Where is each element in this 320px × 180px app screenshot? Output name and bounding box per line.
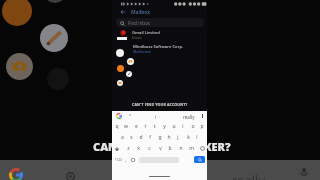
button[interactable]: Shift [113,143,121,154]
staticText: * [129,113,132,118]
button[interactable]: Backspace [198,143,206,154]
button[interactable]: x [134,143,142,154]
button[interactable]: Back [120,9,126,15]
staticText: t [154,123,156,130]
staticText: CAN [93,139,118,154]
staticText: s [130,134,133,141]
button[interactable]: i [179,121,187,132]
button[interactable]: k [184,132,192,143]
button[interactable]: h [165,132,173,143]
button[interactable]: u [170,121,178,132]
staticText: o [191,123,195,130]
button[interactable]: w [122,121,130,132]
button[interactable]: Google Lens [66,172,75,180]
staticText: j [177,134,179,141]
staticText: really [232,171,266,180]
staticText: u [172,123,176,130]
staticText: q [115,123,119,130]
button[interactable]: q [113,121,121,132]
staticText: f [149,134,151,141]
staticText: Gmail Limited [132,30,160,36]
staticText: p [200,123,204,130]
button[interactable]: Find inbox [116,18,204,27]
staticText: d [139,134,143,141]
button[interactable]: l [193,132,201,143]
staticText: g [158,134,162,141]
button[interactable]: Google [9,168,23,180]
button[interactable]: y [160,121,168,132]
button[interactable]: Gmail Limited [112,29,207,42]
button[interactable]: s [127,132,135,143]
staticText: m [189,145,194,152]
button[interactable]: d [137,132,145,143]
button[interactable]: b [166,143,174,154]
button[interactable]: m [187,143,195,154]
button[interactable]: Google [116,113,122,119]
button[interactable]: p [198,121,206,132]
button[interactable]: v [156,143,164,154]
staticText: l [196,134,198,141]
button[interactable]: t [151,121,159,132]
staticText: CAN'T FIND YOUR ACCOUNT? [132,102,188,107]
staticText: Find inbox [128,20,150,26]
staticText: KER? [204,139,231,154]
button[interactable]: n [177,143,185,154]
staticText: e [135,123,138,130]
staticText: h [167,134,171,141]
button[interactable]: CAN'T FIND YOUR ACCOUNT? [128,100,192,109]
staticText: Inbox [132,35,142,40]
staticText: n [179,145,183,152]
button[interactable]: a [118,132,126,143]
button[interactable]: Emoji [129,154,137,165]
button[interactable]: Search [194,156,205,163]
button[interactable]: Voice search [299,167,309,177]
staticText: r [144,123,147,130]
staticText: Mailboxed [133,49,151,54]
button[interactable]: g [156,132,164,143]
button[interactable]: o [189,121,197,132]
staticText: , [125,157,127,163]
staticText: z [127,145,130,152]
staticText: Mindbuzz Software Corp. [133,44,184,50]
staticText: x [137,145,140,152]
button[interactable]: f [146,132,154,143]
staticText: v [159,145,162,152]
staticText: k [187,134,190,141]
button[interactable]: j [174,132,182,143]
button[interactable]: , [123,154,129,165]
button[interactable]: r [141,121,149,132]
staticText: a [121,134,124,141]
button[interactable]: c [145,143,153,154]
staticText: i [155,114,157,120]
staticText: w [124,123,128,130]
staticText: really [183,114,195,120]
staticText: Mailbox [131,9,150,16]
staticText: y [163,123,166,130]
staticText: ?123 [115,158,122,162]
staticText: b [168,145,172,152]
button[interactable]: z [124,143,132,154]
staticText: i [182,123,184,130]
button[interactable]: ?123 [114,154,123,165]
staticText: c [148,145,151,152]
button[interactable]: Mindbuzz Software Corp. [112,43,207,56]
button[interactable]: e [132,121,140,132]
